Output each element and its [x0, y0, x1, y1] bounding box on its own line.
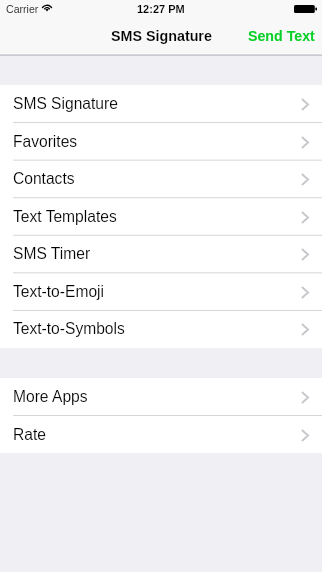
- staticText: Text-to-Symbols: [13, 320, 125, 337]
- button[interactable]: SMS Signature: [0, 85, 322, 123]
- other: Open: [301, 323, 309, 336]
- staticText: SMS Signature: [111, 28, 212, 44]
- other: Open: [301, 248, 309, 261]
- staticText: Rate: [13, 426, 46, 443]
- other: Open: [301, 136, 309, 149]
- other: Open: [301, 286, 309, 299]
- other: Open: [301, 173, 309, 186]
- button[interactable]: Rate: [0, 416, 322, 454]
- other: Open: [301, 211, 309, 224]
- staticText: SMS Timer: [13, 245, 91, 262]
- other: Wi-Fi signal: [41, 2, 53, 11]
- staticText: Send Text: [248, 28, 315, 44]
- staticText: Text-to-Emoji: [13, 283, 104, 300]
- button[interactable]: Contacts: [0, 160, 322, 198]
- staticText: 12:27 PM: [137, 3, 185, 15]
- staticText: Text Templates: [13, 208, 117, 225]
- button[interactable]: Text Templates: [0, 198, 322, 236]
- other: Open: [301, 391, 309, 404]
- button[interactable]: Send Text: [241, 22, 322, 52]
- other: Open: [301, 98, 309, 111]
- staticText: Contacts: [13, 170, 75, 187]
- staticText: Carrier: [6, 3, 39, 15]
- staticText: SMS Signature: [13, 95, 118, 112]
- other: Battery full: [294, 5, 317, 13]
- button[interactable]: Favorites: [0, 123, 322, 161]
- button[interactable]: More Apps: [0, 378, 322, 416]
- button[interactable]: Text-to-Symbols: [0, 310, 322, 348]
- staticText: More Apps: [13, 388, 88, 405]
- staticText: Favorites: [13, 133, 78, 150]
- other: Open: [301, 429, 309, 442]
- button[interactable]: Text-to-Emoji: [0, 273, 322, 311]
- button[interactable]: SMS Timer: [0, 235, 322, 273]
